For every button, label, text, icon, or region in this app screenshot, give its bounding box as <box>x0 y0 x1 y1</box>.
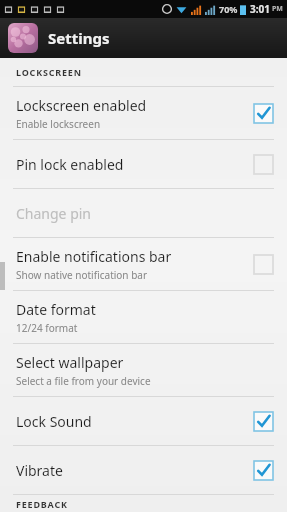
other: Enable notifications bar <box>254 255 273 274</box>
button[interactable]: Vibrate <box>0 446 287 494</box>
staticText: Enable notifications bar <box>16 247 172 266</box>
staticText: Lockscreen enabled <box>16 96 147 115</box>
staticText: Pin lock enabled <box>16 155 124 174</box>
button[interactable]: Lock Sound <box>0 397 287 445</box>
button[interactable]: Select wallpaper <box>0 344 287 396</box>
staticText: Vibrate <box>16 461 63 480</box>
staticText: Show native notification bar <box>16 268 148 282</box>
staticText: 3:01 <box>250 2 270 16</box>
staticText: 12/24 format <box>16 321 78 335</box>
other: Lock Sound <box>254 412 273 431</box>
staticText: LOCKSCREEN <box>16 66 82 78</box>
staticText: Date format <box>16 300 96 319</box>
button[interactable]: Enable notifications bar <box>0 238 287 290</box>
staticText: Select a file from your device <box>16 374 151 388</box>
staticText: Change pin <box>16 204 92 223</box>
button[interactable]: Pin lock enabled <box>0 140 287 188</box>
button[interactable]: Change pin <box>0 189 287 237</box>
staticText: Select wallpaper <box>16 353 124 372</box>
staticText: Enable lockscreen <box>16 117 101 131</box>
button[interactable]: Lockscreen enabled <box>0 87 287 139</box>
other: Vibrate <box>254 461 273 480</box>
other: Pin lock enabled <box>254 155 273 174</box>
staticText: Lock Sound <box>16 412 92 431</box>
staticText: PM <box>272 4 283 14</box>
staticText: 70% <box>219 3 238 15</box>
other: Lockscreen enabled <box>254 104 273 123</box>
button[interactable]: Date format <box>0 291 287 343</box>
staticText: Settings <box>48 28 110 48</box>
staticText: FEEDBACK <box>16 498 68 510</box>
